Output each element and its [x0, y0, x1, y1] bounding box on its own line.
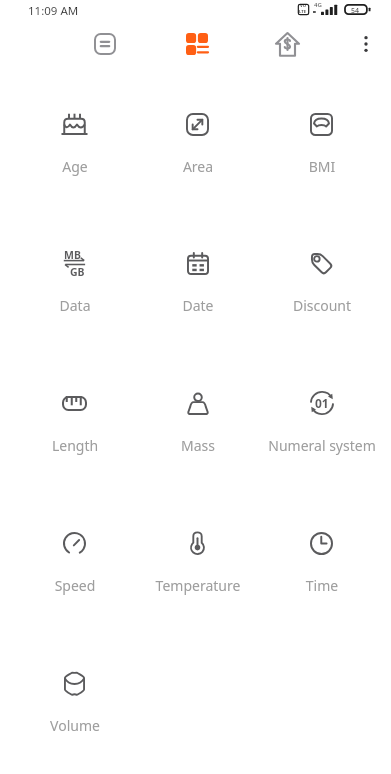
- button[interactable]: Temperature: [136, 506, 260, 626]
- button[interactable]: Length: [13, 366, 137, 486]
- staticText: LTE: [299, 9, 307, 15]
- button[interactable]: Mass: [136, 366, 260, 486]
- button[interactable]: Date: [136, 226, 260, 346]
- staticText: Time: [260, 576, 384, 595]
- button[interactable]: Volume: [13, 646, 137, 766]
- button[interactable]: Age: [13, 87, 137, 207]
- staticText: Mass: [136, 436, 260, 455]
- staticText: Volume: [13, 716, 137, 735]
- staticText: 54: [351, 6, 360, 16]
- staticText: Temperature: [136, 576, 260, 595]
- staticText: GB: [70, 265, 85, 279]
- button[interactable]: Calculator: [86, 25, 124, 63]
- staticText: Area: [136, 157, 260, 176]
- staticText: BMI: [260, 157, 384, 176]
- staticText: Speed: [13, 576, 137, 595]
- staticText: Length: [13, 436, 137, 455]
- button[interactable]: Finance: [267, 24, 308, 65]
- staticText: VO: [300, 3, 306, 9]
- staticText: Data: [13, 296, 137, 315]
- button[interactable]: More options: [350, 28, 381, 59]
- button[interactable]: MB: [13, 226, 137, 346]
- button[interactable]: Speed: [13, 506, 137, 626]
- staticText: Date: [136, 296, 260, 315]
- staticText: 4G: [314, 1, 322, 9]
- staticText: MB: [64, 248, 81, 262]
- staticText: Numeral system: [260, 436, 384, 455]
- staticText: Age: [13, 157, 137, 176]
- staticText: 11:09 AM: [28, 3, 79, 19]
- button[interactable]: Time: [260, 506, 384, 626]
- button[interactable]: Area: [136, 87, 260, 207]
- button[interactable]: BMI: [260, 87, 384, 207]
- staticText: Discount: [260, 296, 384, 315]
- button[interactable]: 01: [260, 366, 384, 486]
- button[interactable]: Converters: [178, 25, 216, 63]
- staticText: 01: [315, 395, 329, 411]
- button[interactable]: Discount: [260, 226, 384, 346]
